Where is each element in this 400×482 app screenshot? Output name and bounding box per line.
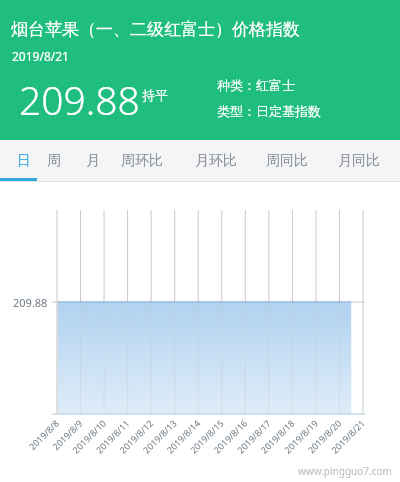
button[interactable]: 周	[47, 140, 61, 181]
staticText: 类型：日定基指数	[217, 103, 321, 119]
staticText: 月环比	[195, 152, 237, 170]
staticText: 月	[86, 152, 100, 170]
button[interactable]: 月	[86, 140, 100, 181]
staticText: 209.88	[19, 73, 140, 126]
staticText: 烟台苹果（一、二级红富士）价格指数	[11, 19, 300, 40]
staticText: 周	[47, 152, 61, 170]
button[interactable]: 周同比	[266, 140, 308, 181]
button[interactable]: 日	[17, 140, 31, 181]
staticText: 周环比	[121, 152, 163, 170]
staticText: 2019/8/21	[12, 48, 69, 64]
staticText: 持平	[142, 87, 168, 103]
staticText: 种类：红富士	[217, 77, 295, 93]
button[interactable]: 月环比	[195, 140, 237, 181]
button[interactable]: 周环比	[121, 140, 163, 181]
button[interactable]: 月同比	[338, 140, 380, 181]
staticText: 月同比	[338, 152, 380, 170]
staticText: 周同比	[266, 152, 308, 170]
staticText: 日	[17, 152, 31, 170]
